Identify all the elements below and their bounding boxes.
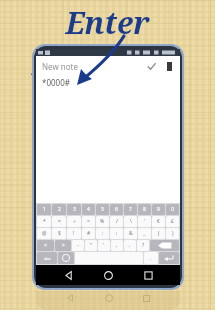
button[interactable]: Backspace <box>150 240 179 251</box>
button[interactable]: Home <box>100 267 116 283</box>
button[interactable]: \ <box>124 216 137 227</box>
staticText: 3 <box>73 206 76 213</box>
button[interactable]: 0 <box>166 204 179 215</box>
button[interactable]: < <box>37 240 54 251</box>
staticText: / <box>116 218 118 225</box>
staticText: $ <box>58 230 61 237</box>
button[interactable]: Enter <box>159 252 179 264</box>
button[interactable]: 7 <box>124 204 137 215</box>
button[interactable]: = <box>82 216 95 227</box>
staticText: ? <box>142 242 145 249</box>
staticText: ( <box>158 230 160 237</box>
button[interactable]: ( <box>152 228 165 239</box>
staticText: ; <box>116 230 118 237</box>
staticText: ' <box>103 242 105 249</box>
button[interactable]: # <box>82 228 95 239</box>
staticText: _ <box>143 230 146 237</box>
button[interactable]: * <box>37 216 51 227</box>
staticText: @ <box>42 230 47 237</box>
staticText: 4 <box>87 206 90 213</box>
staticText: *0000# <box>42 77 70 88</box>
button[interactable]: ? <box>137 240 149 251</box>
button[interactable]: 5 <box>96 204 109 215</box>
button[interactable]: £ <box>166 216 179 227</box>
staticText: 9 <box>157 206 160 213</box>
staticText: : <box>102 230 104 237</box>
button[interactable]: ; <box>110 228 123 239</box>
staticText: > <box>62 242 65 249</box>
staticText: abc <box>44 256 51 261</box>
button[interactable]: ` <box>138 216 151 227</box>
button[interactable]: > <box>55 240 71 251</box>
staticText: < <box>44 242 47 249</box>
staticText: " <box>90 242 93 249</box>
staticText: ! <box>73 230 75 237</box>
button[interactable]: 2 <box>52 204 66 215</box>
button[interactable]: Recent apps <box>140 267 156 283</box>
staticText: \ <box>130 218 132 225</box>
staticText: . <box>129 242 131 249</box>
button[interactable]: , <box>111 240 123 251</box>
staticText: & <box>129 230 133 237</box>
button[interactable]: More options <box>162 59 176 73</box>
staticText: × <box>58 218 61 225</box>
button[interactable]: 6 <box>110 204 123 215</box>
staticText: ` <box>144 218 146 225</box>
button[interactable]: @ <box>37 228 51 239</box>
button[interactable]: Save note <box>144 59 158 73</box>
staticText: , <box>116 242 118 249</box>
staticText: £ <box>171 218 174 225</box>
button[interactable]: Back <box>60 267 76 283</box>
button[interactable]: ! <box>67 228 81 239</box>
button[interactable]: : <box>96 228 109 239</box>
staticText: * <box>43 218 46 225</box>
staticText: . <box>150 255 152 262</box>
staticText: = <box>87 218 90 225</box>
button[interactable]: . <box>144 252 158 264</box>
staticText: 7 <box>129 206 132 213</box>
button[interactable]: ) <box>166 228 179 239</box>
button[interactable]: Emoji <box>58 252 74 264</box>
staticText: ÷ <box>73 218 76 225</box>
button[interactable]: 8 <box>138 204 151 215</box>
button[interactable]: ÷ <box>67 216 81 227</box>
button[interactable]: " <box>85 240 97 251</box>
button[interactable]: abc <box>37 252 57 264</box>
staticText: € <box>157 218 160 225</box>
staticText: ) <box>172 230 174 237</box>
staticText: 0 <box>171 206 174 213</box>
button[interactable]: ' <box>98 240 110 251</box>
button[interactable]: / <box>110 216 123 227</box>
button[interactable]: - <box>72 240 84 251</box>
staticText: Enter Password <box>0 2 215 84</box>
button[interactable]: _ <box>138 228 151 239</box>
button[interactable]: 3 <box>67 204 81 215</box>
button[interactable]: % <box>96 216 109 227</box>
button[interactable]: $ <box>52 228 66 239</box>
staticText: 5 <box>101 206 104 213</box>
button[interactable]: 4 <box>82 204 95 215</box>
button[interactable]: 9 <box>152 204 165 215</box>
staticText: 1 <box>43 206 46 213</box>
staticText: 2 <box>58 206 61 213</box>
button[interactable]: × <box>52 216 66 227</box>
staticText: - <box>77 242 79 249</box>
button[interactable]: € <box>152 216 165 227</box>
button[interactable]: 1 <box>37 204 51 215</box>
staticText: % <box>100 218 105 225</box>
staticText: 8 <box>143 206 146 213</box>
staticText: # <box>87 230 91 237</box>
button[interactable]: & <box>124 228 137 239</box>
staticText: 6 <box>115 206 118 213</box>
staticText: New note <box>42 61 78 72</box>
button[interactable]: . <box>124 240 136 251</box>
